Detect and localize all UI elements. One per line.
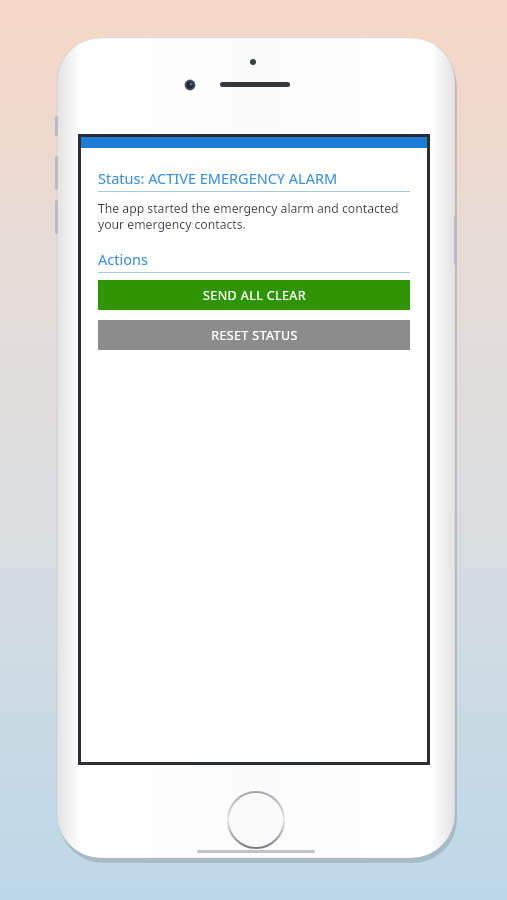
staticText: Status: ACTIVE EMERGENCY ALARM [98, 168, 338, 188]
staticText: Actions [98, 249, 148, 269]
staticText: The app started the emergency alarm and … [98, 200, 410, 232]
button[interactable]: SEND ALL CLEAR [98, 280, 410, 310]
button[interactable]: RESET STATUS [98, 320, 410, 350]
staticText: SEND ALL CLEAR [203, 287, 306, 304]
staticText: RESET STATUS [211, 327, 298, 344]
